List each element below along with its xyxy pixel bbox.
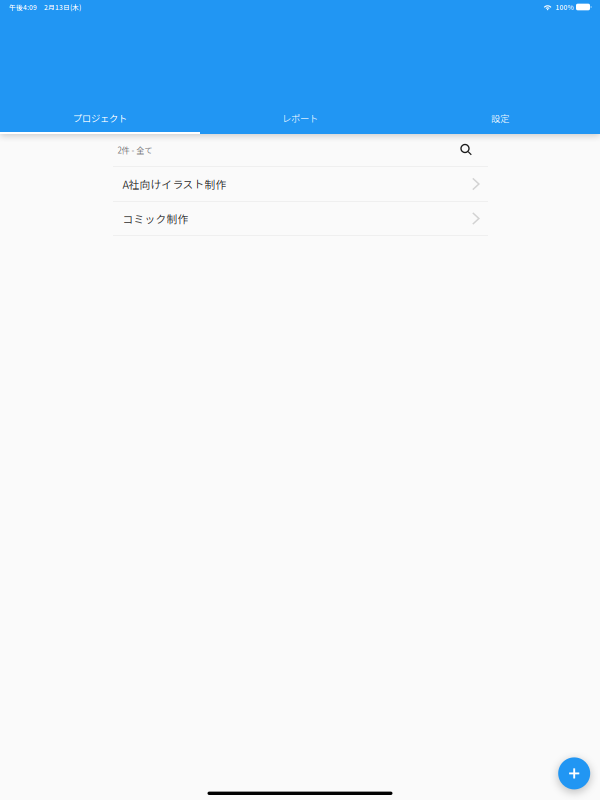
staticText: 午後4:09 2月13日(木): [9, 2, 81, 12]
button[interactable]: レポート: [200, 103, 400, 134]
button[interactable]: コミック制作: [113, 202, 488, 235]
staticText: 設定: [491, 111, 509, 125]
button[interactable]: A社向けイラスト制作: [113, 167, 488, 201]
button[interactable]: プロジェクト: [0, 103, 200, 134]
staticText: 100%: [555, 2, 573, 12]
staticText: レポート: [282, 111, 318, 125]
button[interactable]: 検索: [456, 139, 477, 160]
staticText: 2件 - 全て: [117, 144, 152, 156]
staticText: A社向けイラスト制作: [122, 176, 226, 192]
button[interactable]: 新規プロジェクトを追加: [558, 757, 590, 789]
staticText: プロジェクト: [73, 111, 127, 125]
staticText: コミック制作: [122, 211, 188, 226]
button[interactable]: 設定: [400, 103, 600, 134]
